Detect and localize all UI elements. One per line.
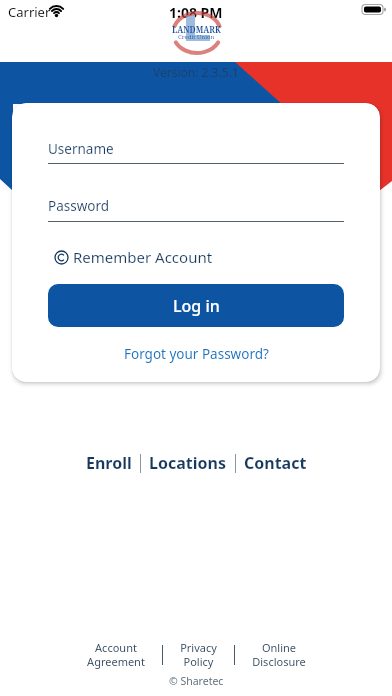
button[interactable]: Privacy Policy bbox=[180, 640, 217, 669]
button[interactable]: Remember Account bbox=[54, 247, 213, 267]
button[interactable]: Forgot your Password? bbox=[124, 345, 269, 363]
staticText: Remember Account bbox=[73, 247, 213, 267]
button[interactable]: Contact bbox=[244, 452, 307, 474]
button[interactable]: Enroll bbox=[86, 452, 132, 474]
staticText: Credit Union bbox=[178, 33, 215, 41]
staticText: LANDMARK bbox=[172, 24, 221, 35]
staticText: 1:08 PM bbox=[169, 3, 223, 22]
button[interactable]: Account Agreement bbox=[87, 640, 145, 669]
staticText: Version: 2.3.5.1 bbox=[153, 64, 239, 80]
button[interactable]: Online Disclosure bbox=[252, 640, 306, 669]
staticText: Log in bbox=[173, 295, 220, 317]
button[interactable]: Locations bbox=[149, 452, 226, 474]
staticText: Carrier bbox=[8, 3, 51, 21]
staticText: Password bbox=[48, 197, 110, 215]
staticText: © Sharetec bbox=[169, 674, 224, 688]
staticText: Username bbox=[48, 140, 114, 158]
button[interactable]: Log in bbox=[48, 284, 344, 327]
